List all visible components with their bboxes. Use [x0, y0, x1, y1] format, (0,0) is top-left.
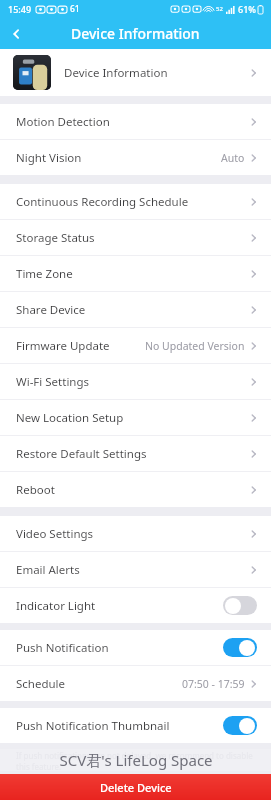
staticText: Restore Default Settings [16, 446, 147, 462]
button[interactable]: Reboot [0, 472, 271, 507]
staticText: SCV君's LifeLog Space [59, 750, 213, 770]
staticText: Push Notification Thumbnail [16, 718, 170, 734]
staticText: Night Vision [16, 150, 82, 166]
button[interactable]: Motion Detection [0, 104, 271, 140]
button[interactable]: Time Zone [0, 256, 271, 292]
staticText: Reboot [16, 482, 55, 498]
button[interactable]: Delete Device [0, 774, 271, 800]
staticText: Schedule [16, 676, 66, 692]
staticText: Auto [221, 151, 245, 165]
button[interactable]: Continuous Recording Schedule [0, 184, 271, 220]
staticText: Email Alerts [16, 562, 80, 578]
button[interactable]: New Location Setup [0, 400, 271, 436]
staticText: Motion Detection [16, 114, 110, 130]
staticText: Time Zone [16, 266, 73, 282]
staticText: 61 [70, 3, 80, 15]
button[interactable]: Video Settings [0, 516, 271, 552]
button[interactable]: Share Device [0, 292, 271, 328]
staticText: 61% [238, 3, 256, 15]
staticText: Wi-Fi Settings [16, 374, 90, 390]
staticText: If push notifications are not delayed, w… [16, 750, 255, 772]
button[interactable]: Back [0, 18, 34, 49]
staticText: 15:49 [8, 3, 32, 15]
button[interactable]: Push Notification Thumbnail [0, 708, 271, 743]
staticText: No Updated Version [145, 339, 245, 353]
button[interactable]: Wi-Fi Settings [0, 364, 271, 400]
staticText: Indicator Light [16, 598, 96, 614]
staticText: Push Notification [16, 640, 109, 656]
button[interactable]: Storage Status [0, 220, 271, 256]
button[interactable]: Firmware Update [0, 328, 271, 364]
staticText: Device Information [71, 24, 200, 43]
button[interactable]: Indicator Light [0, 588, 271, 623]
staticText: Video Settings [16, 526, 94, 542]
button[interactable]: Device Information [0, 49, 271, 96]
staticText: Firmware Update [16, 338, 110, 354]
button[interactable]: Email Alerts [0, 552, 271, 588]
staticText: Share Device [16, 302, 86, 318]
staticText: 52 [216, 5, 223, 13]
staticText: Continuous Recording Schedule [16, 194, 189, 210]
staticText: New Location Setup [16, 410, 124, 426]
staticText: 07:50 - 17:59 [182, 677, 245, 691]
button[interactable]: Restore Default Settings [0, 436, 271, 472]
button[interactable]: Night Vision [0, 140, 271, 175]
staticText: Device Information [64, 65, 168, 81]
button[interactable]: Schedule [0, 666, 271, 701]
staticText: Delete Device [100, 780, 172, 795]
staticText: Storage Status [16, 230, 95, 246]
button[interactable]: Push Notification [0, 630, 271, 666]
